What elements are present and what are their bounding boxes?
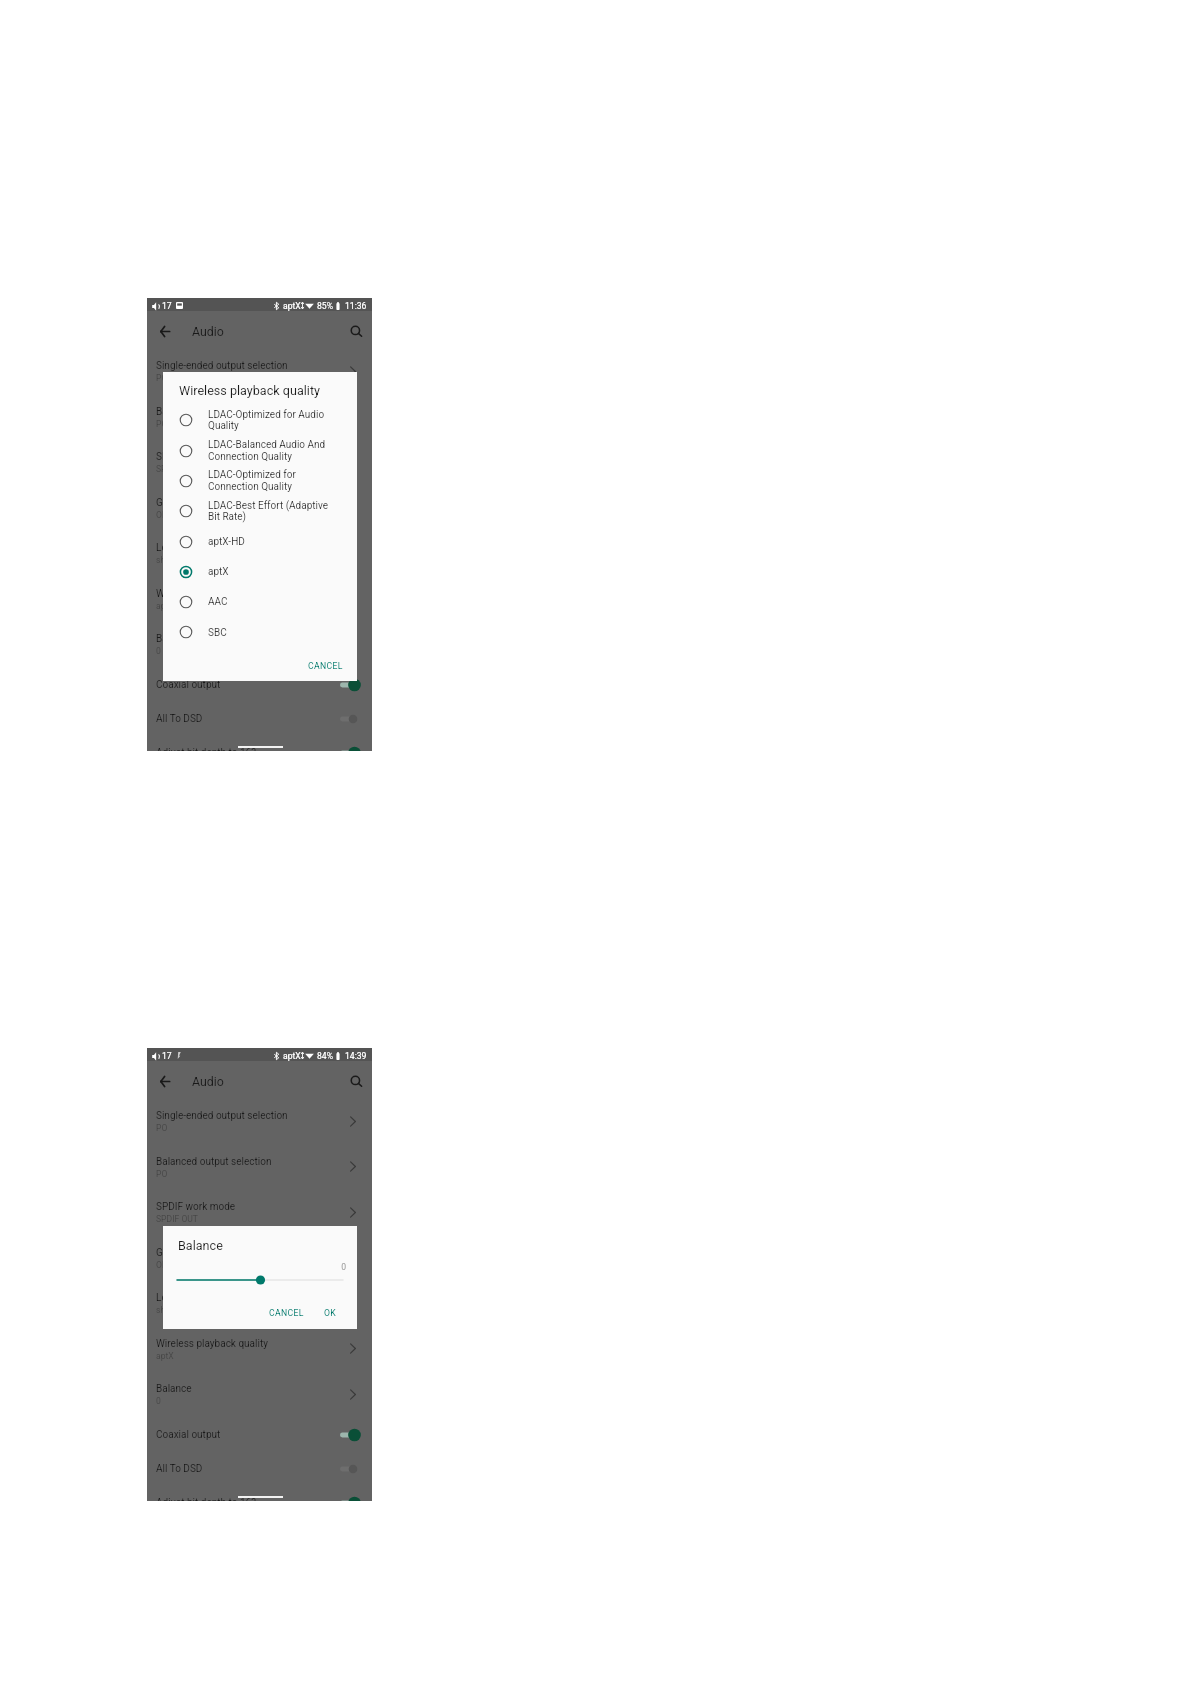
staticText: sharp roll off — [156, 1305, 205, 1315]
button[interactable]: OK — [318, 1304, 343, 1322]
staticText: Single-ended output selection — [156, 360, 288, 372]
staticText: Single-ended output selection — [156, 1110, 288, 1122]
button[interactable]: CANCEL — [301, 656, 349, 676]
button[interactable]: Gain — [147, 483, 372, 529]
staticText: aptX — [283, 301, 301, 311]
button[interactable]: Back — [151, 1067, 179, 1095]
staticText: Adjust bit depth to 16? — [156, 1497, 256, 1501]
staticText: 17 — [162, 1051, 172, 1061]
staticText: All To DSD — [156, 713, 203, 725]
button[interactable]: Low pass filter — [147, 528, 372, 574]
staticText: Low pass filter — [156, 1292, 221, 1304]
button[interactable]: Single-ended output selection — [147, 346, 372, 392]
button[interactable]: SPDIF work mode — [147, 1187, 372, 1233]
staticText: sharp roll off — [156, 555, 205, 565]
staticText: LDAC-Optimized for Audio — [208, 409, 325, 421]
staticText: Wireless playback quality — [156, 1338, 268, 1350]
staticText: SPDIF work mode — [156, 451, 236, 463]
staticText: 14:39 — [345, 1051, 367, 1061]
staticText: ON — [156, 1260, 169, 1270]
staticText: Connection Quality — [208, 451, 292, 463]
staticText: Balance — [178, 1238, 223, 1253]
staticText: Balance — [156, 633, 192, 645]
staticText: Balance — [156, 1383, 192, 1395]
staticText: Balanced output selection — [156, 1156, 272, 1168]
staticText: SBC — [208, 627, 227, 639]
button[interactable]: Wireless playback quality — [147, 1324, 372, 1370]
button[interactable]: SPDIF work mode — [147, 437, 372, 483]
button[interactable]: Wireless playback quality — [147, 574, 372, 620]
button[interactable]: Coaxial output — [147, 1418, 372, 1452]
button[interactable]: Back — [151, 317, 179, 345]
button[interactable]: Balanced output selection — [147, 1142, 372, 1188]
button[interactable]: SBC — [163, 617, 357, 647]
staticText: Wireless playback quality — [179, 383, 320, 398]
staticText: Balanced output selection — [156, 406, 272, 418]
button[interactable]: Adjust bit depth to 16? — [147, 1486, 372, 1501]
staticText: 11:36 — [345, 301, 367, 311]
button[interactable]: All To DSD — [147, 702, 372, 736]
staticText: Quality — [208, 420, 239, 432]
staticText: Low pass filter — [156, 542, 221, 554]
staticText: aptX — [283, 1051, 301, 1061]
staticText: PO — [156, 419, 168, 429]
staticText: Gain — [156, 1247, 177, 1259]
button[interactable]: LDAC-Balanced Audio And — [163, 435, 357, 465]
staticText: Coaxial output — [156, 679, 221, 691]
button[interactable]: LDAC-Optimized for Audio — [163, 405, 357, 435]
staticText: Audio — [192, 324, 224, 339]
button[interactable]: Balance — [147, 1369, 372, 1415]
staticText: AAC — [208, 596, 228, 608]
staticText: 84% — [317, 1051, 333, 1061]
staticText: PO — [156, 1123, 168, 1133]
staticText: aptX — [208, 566, 229, 578]
staticText: Wireless playback quality — [156, 588, 268, 600]
staticText: Connection Quality — [208, 481, 292, 493]
button[interactable]: Adjust bit depth to 16? — [147, 736, 372, 751]
button[interactable]: CANCEL — [267, 1304, 305, 1322]
staticText: All To DSD — [156, 1463, 203, 1475]
button[interactable]: Balance — [147, 619, 372, 665]
staticText: CANCEL — [269, 1308, 304, 1318]
staticText: ON — [156, 510, 169, 520]
button[interactable]: Coaxial output — [147, 668, 372, 702]
button[interactable]: Single-ended output selection — [147, 1096, 372, 1142]
staticText: LDAC-Best Effort (Adaptive — [208, 500, 329, 512]
button[interactable]: All To DSD — [147, 1452, 372, 1486]
staticText: 0 — [156, 1396, 161, 1406]
button[interactable]: Search — [342, 317, 370, 345]
staticText: aptX-HD — [208, 536, 245, 548]
button[interactable]: Low pass filter — [147, 1278, 372, 1324]
staticText: Audio — [192, 1074, 224, 1089]
button[interactable]: Gain — [147, 1233, 372, 1279]
button[interactable]: LDAC-Optimized for — [163, 465, 357, 495]
staticText: Coaxial output — [156, 1429, 221, 1441]
staticText: LDAC-Balanced Audio And — [208, 439, 326, 451]
button[interactable]: AAC — [163, 587, 357, 617]
button[interactable]: Search — [342, 1067, 370, 1095]
staticText: 17 — [162, 301, 172, 311]
staticText: LDAC-Optimized for — [208, 469, 296, 481]
staticText: 85% — [317, 301, 333, 311]
staticText: aptX — [156, 1351, 174, 1361]
button[interactable]: aptX — [163, 556, 357, 586]
staticText: 0 — [152, 1262, 346, 1272]
button[interactable]: LDAC-Best Effort (Adaptive — [163, 496, 357, 526]
staticText: SPDIF work mode — [156, 1201, 236, 1213]
staticText: SPDIF OUT — [156, 1214, 198, 1224]
staticText: SPDIF OUT — [156, 464, 198, 474]
staticText: Bit Rate) — [208, 511, 247, 523]
staticText: 0 — [156, 646, 161, 656]
staticText: PO — [156, 373, 168, 383]
staticText: Adjust bit depth to 16? — [156, 747, 256, 751]
button[interactable]: Balanced output selection — [147, 392, 372, 438]
staticText: PO — [156, 1169, 168, 1179]
staticText: Gain — [156, 497, 177, 509]
staticText: aptX — [156, 601, 174, 611]
button[interactable]: aptX-HD — [163, 526, 357, 556]
staticText: CANCEL — [308, 661, 343, 671]
staticText: OK — [324, 1308, 337, 1318]
